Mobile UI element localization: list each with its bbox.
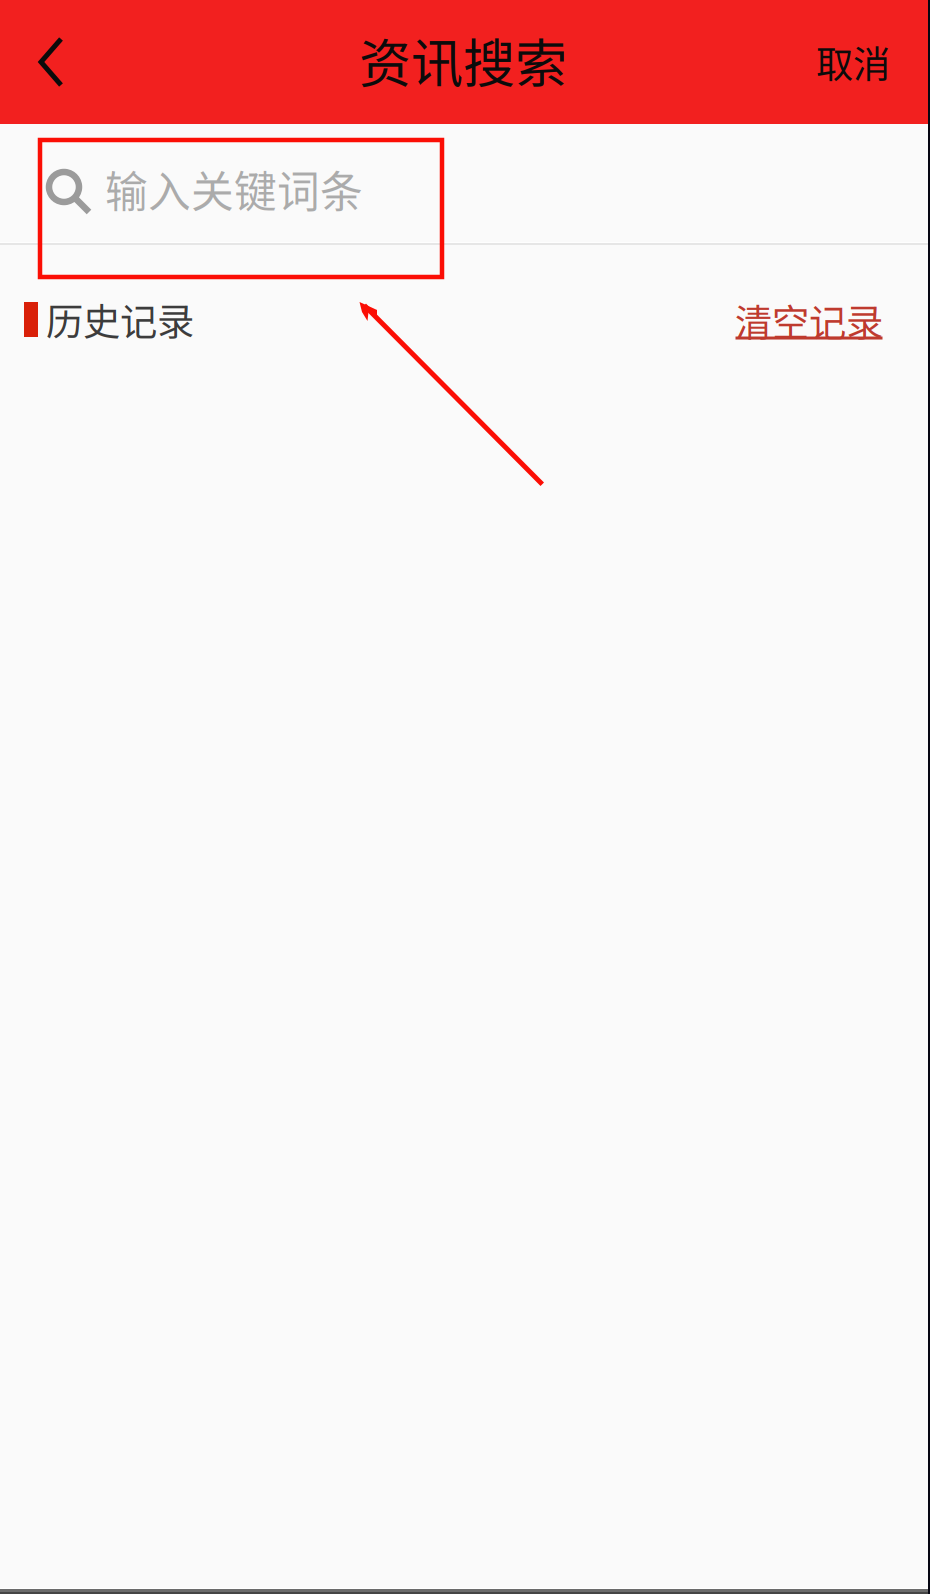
staticText: 输入关键词条 <box>105 158 363 220</box>
staticText: 资讯搜索 <box>359 22 567 98</box>
staticText: 清空记录 <box>735 293 883 348</box>
staticText: 历史记录 <box>46 292 194 347</box>
button[interactable]: 清空记录 <box>735 293 930 346</box>
button[interactable]: Back <box>0 0 130 124</box>
button[interactable]: 输入关键词条 <box>0 124 930 242</box>
button[interactable]: 取消 <box>770 0 930 124</box>
staticText: 取消 <box>816 35 890 89</box>
